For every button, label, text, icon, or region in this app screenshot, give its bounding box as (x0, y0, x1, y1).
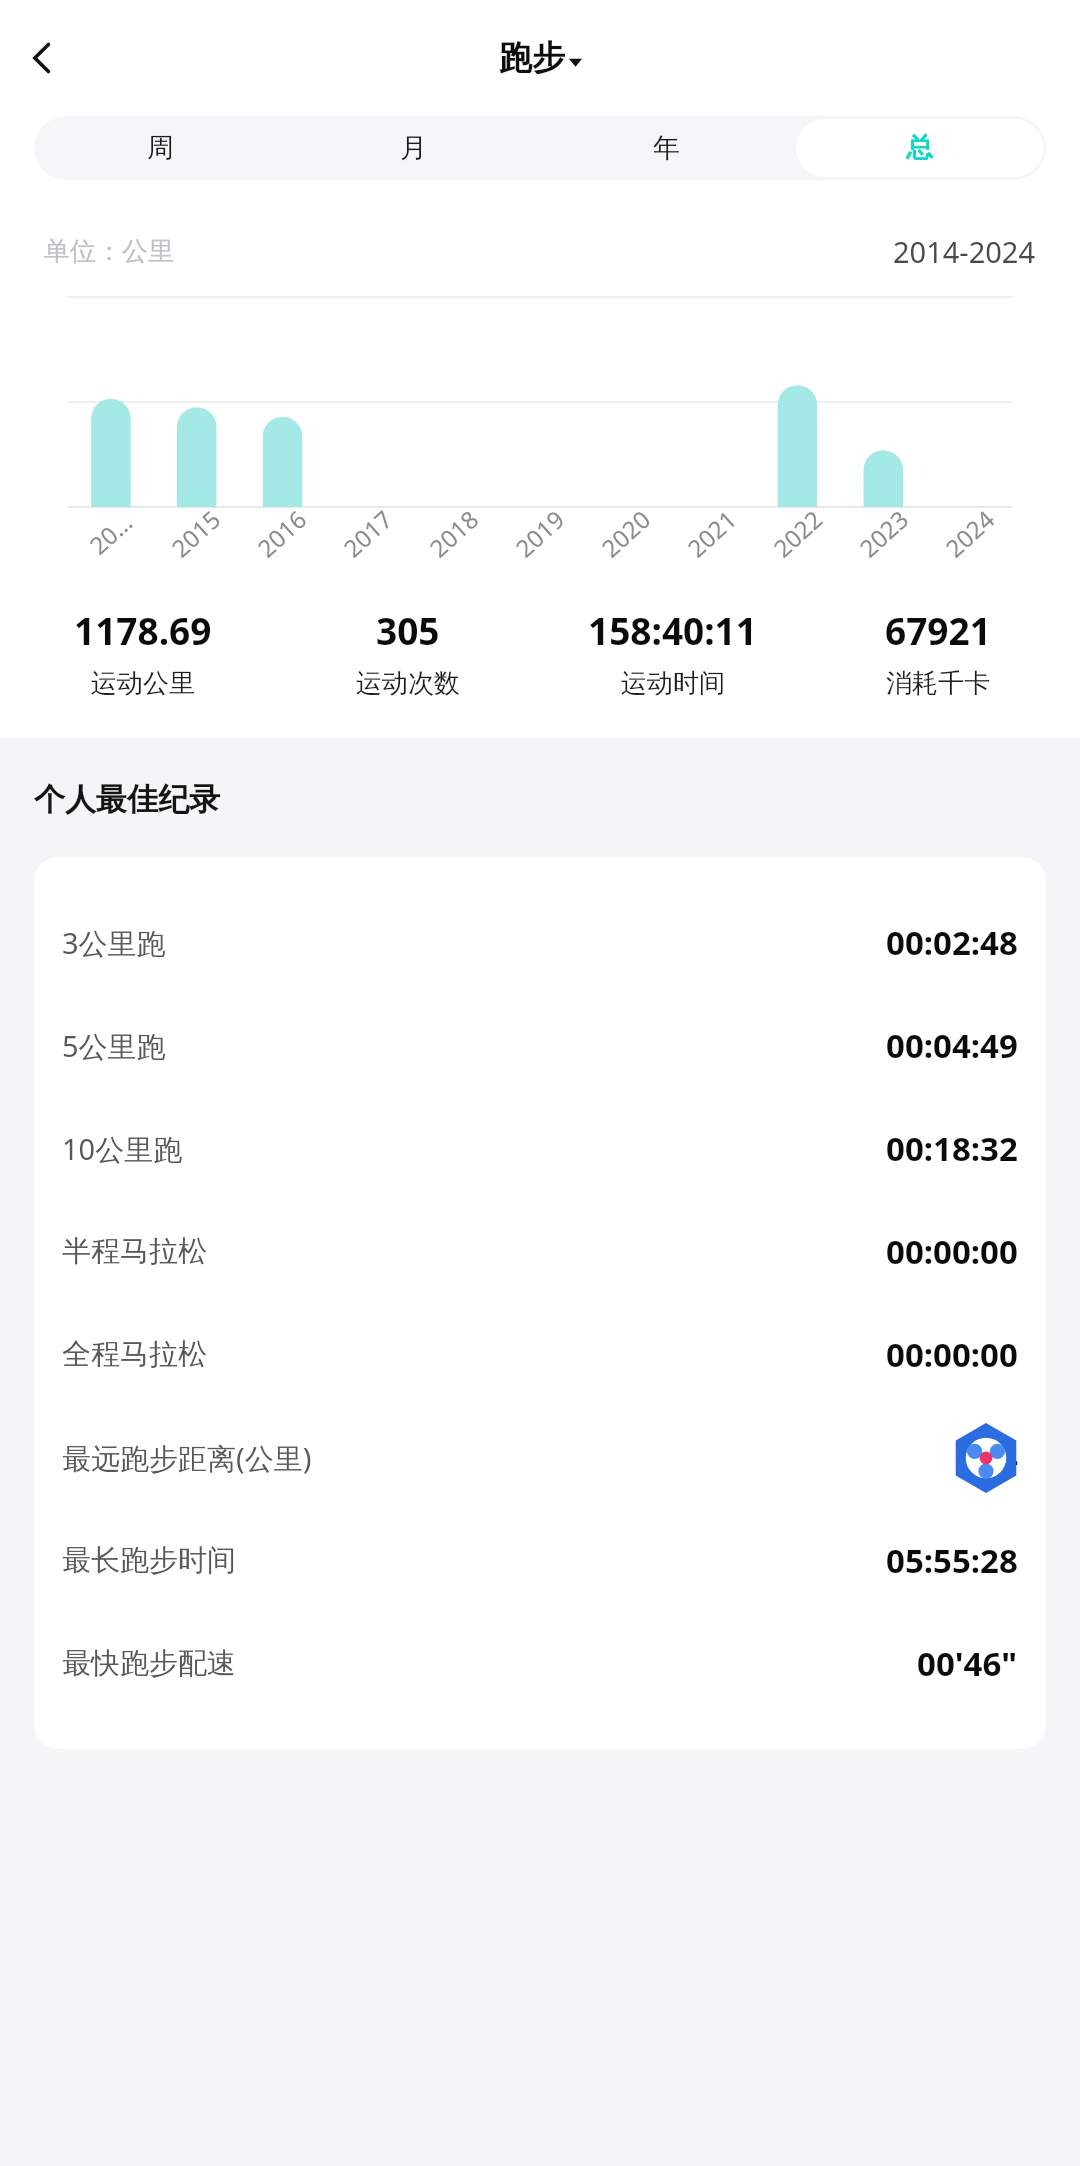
staticText: 00:18:32 (886, 1126, 1018, 1171)
button[interactable]: 67921 (805, 605, 1070, 700)
staticText: 2022 (766, 503, 829, 564)
staticText: 67921 (885, 605, 991, 655)
button[interactable]: 跑步 (499, 37, 582, 79)
staticText: 运动公里 (91, 667, 195, 700)
staticText: 158:40:11 (588, 605, 757, 655)
button[interactable]: 最快跑步配速 (34, 1612, 1046, 1715)
staticText: 总 (906, 131, 933, 165)
button[interactable]: 158:40:11 (540, 605, 805, 700)
button[interactable]: 周 (37, 119, 284, 177)
button[interactable]: 1178.69 (10, 605, 275, 700)
staticText: 运动次数 (356, 667, 460, 700)
staticText: 00'46" (917, 1641, 1018, 1686)
button[interactable]: 半程马拉松 (34, 1200, 1046, 1303)
staticText: 单位：公里 (44, 235, 174, 268)
staticText: 2019 (508, 503, 571, 564)
staticText: 最长跑步时间 (62, 1542, 236, 1579)
staticText: 2020 (594, 503, 657, 564)
button[interactable]: 月 (290, 119, 537, 177)
staticText: 4 (999, 1435, 1018, 1480)
staticText: 2024 (938, 503, 1001, 564)
staticText: 个人最佳纪录 (34, 780, 220, 819)
staticText: 运动时间 (621, 667, 725, 700)
staticText: 2015 (164, 503, 227, 564)
staticText: 5公里跑 (62, 1026, 166, 1066)
button[interactable]: 10公里跑 (34, 1097, 1046, 1200)
staticText: 全程马拉松 (62, 1336, 207, 1373)
staticText: 00:02:48 (886, 920, 1018, 965)
staticText: 最快跑步配速 (62, 1645, 236, 1682)
staticText: 305 (376, 605, 440, 655)
staticText: 最远跑步距离(公里) (62, 1438, 312, 1478)
staticText: 10公里跑 (62, 1129, 183, 1169)
staticText: 跑步 (499, 37, 565, 79)
staticText: 3公里跑 (62, 923, 166, 963)
staticText: 周 (147, 131, 174, 165)
button[interactable]: 305 (275, 605, 540, 700)
staticText: 消耗千卡 (886, 667, 990, 700)
button[interactable]: 年 (543, 119, 790, 177)
button[interactable]: 总 (796, 119, 1043, 177)
staticText: 2014-2024 (893, 232, 1036, 271)
staticText: 半程马拉松 (62, 1233, 207, 1270)
staticText: 00:00:00 (886, 1332, 1018, 1377)
staticText: 1178.69 (74, 605, 212, 655)
button[interactable]: 最远跑步距离(公里) (34, 1406, 1046, 1509)
staticText: 20… (82, 505, 139, 561)
staticText: 05:55:28 (886, 1538, 1018, 1583)
button[interactable]: 5公里跑 (34, 994, 1046, 1097)
button[interactable]: 3公里跑 (34, 891, 1046, 994)
staticText: 2018 (422, 503, 485, 564)
staticText: 2016 (250, 503, 313, 564)
button[interactable]: 全程马拉松 (34, 1303, 1046, 1406)
staticText: 月 (400, 131, 427, 165)
staticText: 2017 (336, 503, 399, 564)
staticText: 00:00:00 (886, 1229, 1018, 1274)
button[interactable]: 最长跑步时间 (34, 1509, 1046, 1612)
staticText: 年 (653, 131, 680, 165)
staticText: 2023 (852, 503, 915, 564)
staticText: 2021 (680, 503, 743, 564)
button[interactable]: Back (10, 25, 76, 91)
staticText: 00:04:49 (886, 1023, 1018, 1068)
